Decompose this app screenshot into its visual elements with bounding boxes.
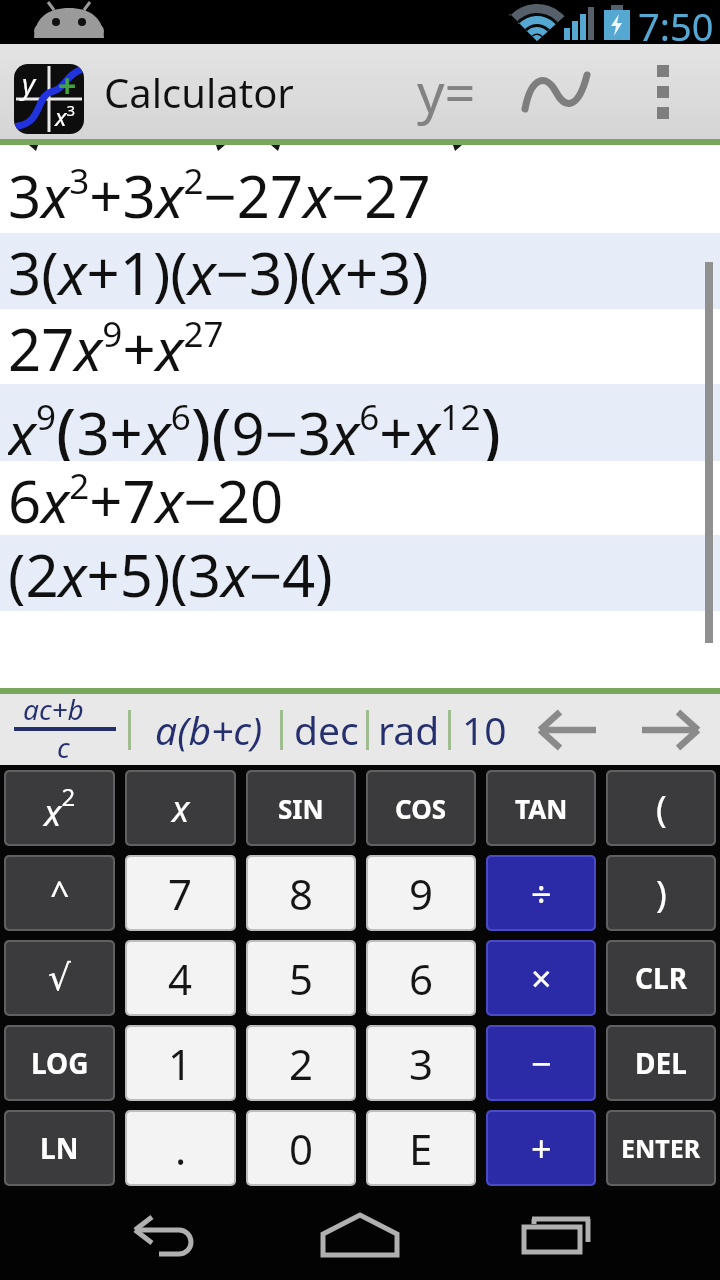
staticText: 7	[168, 865, 193, 922]
button[interactable]: 2	[248, 1027, 354, 1099]
staticText: c	[57, 728, 70, 766]
staticText: y=	[417, 55, 476, 129]
staticText: x9(3+x6)(9−3x6+x12)	[8, 384, 501, 461]
button[interactable]: +	[488, 1112, 594, 1184]
staticText: )	[656, 869, 667, 918]
button[interactable]: SIN	[248, 772, 354, 844]
staticText: ac+b	[23, 690, 84, 728]
staticText: ×	[531, 954, 552, 1003]
button[interactable]: ac+b	[0, 694, 126, 765]
staticText: ÷	[531, 869, 552, 918]
staticText: E	[409, 1120, 433, 1177]
button[interactable]	[75, 1190, 255, 1280]
staticText: CLR	[635, 959, 687, 997]
button[interactable]: (	[608, 772, 714, 844]
button[interactable]: x9(3+x6)(9−3x6+x12)	[0, 384, 720, 461]
button[interactable]: CLR	[608, 942, 714, 1014]
button[interactable]: 5	[248, 942, 354, 1014]
button[interactable]	[528, 694, 610, 765]
button[interactable]	[606, 44, 720, 139]
staticText: (	[656, 784, 667, 833]
staticText: +	[531, 1124, 552, 1173]
button[interactable]: 8	[248, 857, 354, 929]
staticText: 1	[168, 1035, 193, 1092]
staticText: 6	[409, 950, 434, 1007]
staticText: a(b+c)	[155, 703, 263, 756]
button[interactable]: 4	[127, 942, 234, 1014]
button[interactable]: LN	[6, 1112, 113, 1184]
button[interactable]: ENTER	[608, 1112, 714, 1184]
button[interactable]	[628, 694, 710, 765]
staticText: 0	[289, 1120, 314, 1177]
staticText: Calculator	[104, 65, 294, 119]
button[interactable]: 3x3+3x2−27x−27	[0, 156, 720, 233]
staticText: SIN	[278, 791, 324, 826]
button[interactable]: 6x2+7x−20	[0, 461, 720, 535]
staticText: LN	[40, 1129, 79, 1167]
button[interactable]: E	[368, 1112, 474, 1184]
button[interactable]: DEL	[608, 1027, 714, 1099]
staticText: ^	[50, 870, 70, 916]
button[interactable]: dec	[288, 694, 364, 765]
staticText: √	[48, 957, 71, 999]
staticText: x2	[44, 780, 76, 837]
button[interactable]: 10	[454, 694, 514, 765]
staticText: (2x+5)(3x−4)	[8, 535, 333, 611]
staticText: ENTER	[621, 1131, 701, 1165]
button[interactable]: .	[127, 1112, 234, 1184]
staticText: 2	[289, 1035, 314, 1092]
staticText: 10	[462, 703, 507, 756]
button[interactable]: 27x9+x27	[0, 309, 720, 384]
staticText: 3x3+3x2−27x−27	[8, 156, 431, 233]
button[interactable]: x	[127, 772, 234, 844]
staticText: 4	[168, 950, 193, 1007]
staticText: x3	[55, 100, 76, 133]
staticText: 27x9+x27	[8, 309, 224, 384]
staticText: 6x2+7x−20	[8, 461, 284, 535]
staticText: dec	[294, 703, 359, 756]
staticText: 5	[289, 950, 314, 1007]
button[interactable]: rad	[372, 694, 446, 765]
staticText: TAN	[515, 791, 568, 826]
staticText: .	[175, 1120, 187, 1177]
button[interactable]	[467, 1190, 647, 1280]
button[interactable]: ^	[6, 857, 113, 929]
button[interactable]: 0	[248, 1112, 354, 1184]
staticText: x	[172, 784, 190, 833]
staticText: 3	[409, 1035, 434, 1092]
staticText: 7:50	[638, 0, 714, 44]
button[interactable]: 3(x+1)(x−3)(x+3)	[0, 233, 720, 309]
button[interactable]	[270, 1190, 450, 1280]
staticText: 3(x+1)(x−3)(x+3)	[8, 233, 429, 309]
staticText: COS	[395, 791, 447, 826]
staticText: 8	[289, 865, 314, 922]
staticText: DEL	[635, 1044, 687, 1082]
button[interactable]: 1	[127, 1027, 234, 1099]
button[interactable]: 9	[368, 857, 474, 929]
button[interactable]: a(b+c)	[144, 694, 274, 765]
button[interactable]: y=	[386, 44, 506, 139]
button[interactable]: 7	[127, 857, 234, 929]
button[interactable]: TAN	[488, 772, 594, 844]
staticText: rad	[378, 703, 440, 756]
staticText: −	[531, 1039, 552, 1088]
staticText: 9	[409, 865, 434, 922]
button[interactable]: 3	[368, 1027, 474, 1099]
button[interactable]: (2x+5)(3x−4)	[0, 535, 720, 611]
button[interactable]: ÷	[488, 857, 594, 929]
button[interactable]: COS	[368, 772, 474, 844]
button[interactable]: −	[488, 1027, 594, 1099]
button[interactable]	[506, 44, 606, 139]
button[interactable]: √	[6, 942, 113, 1014]
staticText: +	[58, 64, 77, 108]
button[interactable]: ×	[488, 942, 594, 1014]
button[interactable]: )	[608, 857, 714, 929]
button[interactable]: x2	[6, 772, 113, 844]
button[interactable]: 6	[368, 942, 474, 1014]
staticText: LOG	[31, 1044, 89, 1082]
staticText: y	[22, 64, 36, 102]
button[interactable]: LOG	[6, 1027, 113, 1099]
